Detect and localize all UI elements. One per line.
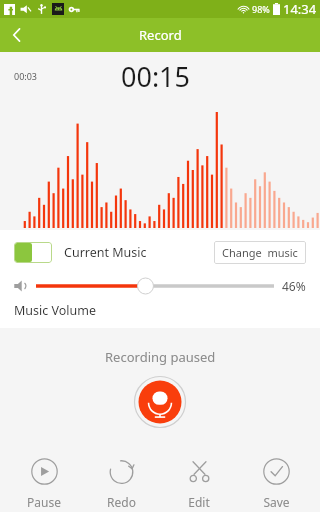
staticText: Record <box>139 26 182 44</box>
staticText: Recording paused <box>105 348 216 366</box>
button[interactable]: Music Volume slider <box>36 276 274 296</box>
button[interactable]: Change music <box>214 241 306 264</box>
staticText: Current Music <box>64 244 147 261</box>
button[interactable]: Pause <box>10 446 78 510</box>
staticText: 00:15 <box>121 58 191 95</box>
staticText: Music Volume <box>14 302 97 319</box>
staticText: 14:34 <box>283 0 317 18</box>
button[interactable]: Save <box>242 446 310 510</box>
button[interactable]: Edit <box>165 446 233 510</box>
staticText: Pause <box>27 494 61 510</box>
staticText: 46% <box>282 278 306 294</box>
button[interactable]: Record <box>134 376 186 428</box>
staticText: 00:03 <box>14 70 38 82</box>
staticText: Edit <box>188 494 210 510</box>
staticText: Change music <box>222 245 298 260</box>
button[interactable]: Redo <box>87 446 155 510</box>
button[interactable]: Current Music toggle <box>14 242 52 263</box>
staticText: Save <box>263 494 290 510</box>
staticText: 98% <box>252 3 270 15</box>
button[interactable]: Back <box>0 18 34 52</box>
staticText: Redo <box>107 494 136 510</box>
